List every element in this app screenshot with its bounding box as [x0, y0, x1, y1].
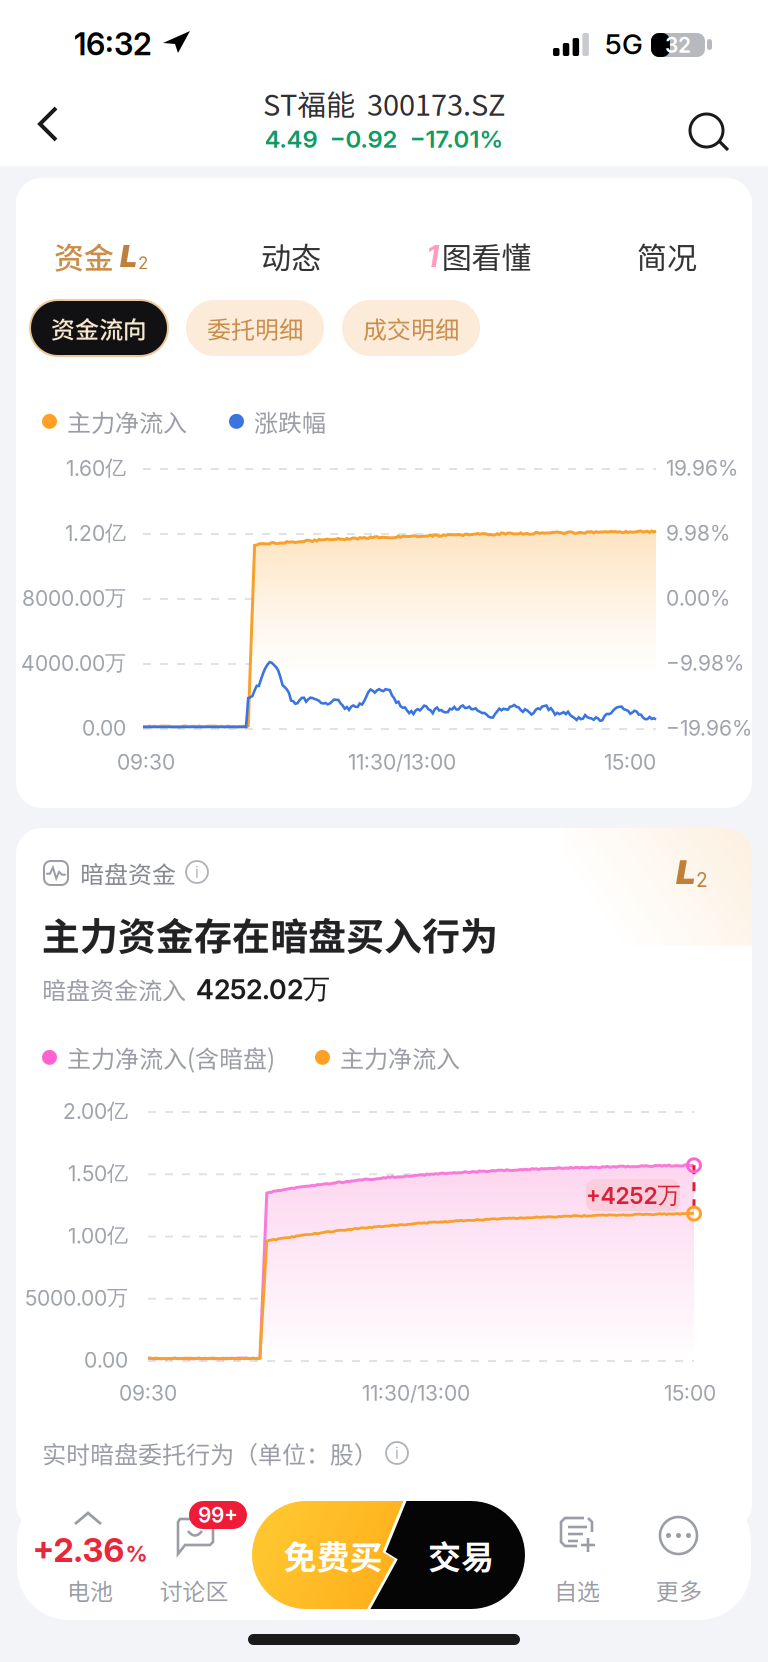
button[interactable]: +2.36 — [20, 1489, 160, 1620]
button[interactable]: 自选 — [521, 1489, 633, 1620]
staticText: 2.00亿 — [63, 1098, 128, 1124]
staticText: +4252万 — [585, 1181, 680, 1210]
staticText: 主力净流入 — [67, 404, 187, 439]
staticText: 交易 — [428, 1531, 494, 1579]
staticText: 1.20亿 — [65, 520, 126, 546]
staticText: 图看懂 — [441, 234, 531, 278]
staticText: i — [195, 862, 199, 882]
staticText: 资金流向 — [51, 311, 147, 345]
staticText: 5G — [605, 27, 643, 61]
button[interactable]: 动态 — [206, 178, 376, 278]
staticText: 更多 — [656, 1573, 702, 1607]
staticText: 99+ — [198, 1502, 238, 1528]
staticText: 15:00 — [664, 1380, 716, 1406]
staticText: 16:32 — [74, 25, 152, 63]
button[interactable]: 1 — [394, 178, 564, 278]
button[interactable]: 免费买 — [252, 1501, 525, 1609]
staticText: 1.60亿 — [66, 455, 126, 481]
staticText: 0.00 — [84, 1347, 128, 1373]
staticText: 动态 — [261, 234, 321, 278]
staticText: 2 — [696, 868, 708, 891]
staticText: % — [125, 1540, 147, 1567]
button[interactable]: 99+ — [129, 1489, 259, 1620]
staticText: 32 — [665, 32, 691, 58]
staticText: 暗盘资金 — [80, 856, 176, 890]
staticText: 实时暗盘委托行为（单位：股） — [42, 1436, 378, 1470]
staticText: 9.98% — [666, 520, 730, 546]
staticText: −19.96% — [666, 715, 752, 741]
staticText: 讨论区 — [159, 1573, 228, 1607]
button[interactable]: 更多 — [623, 1489, 735, 1620]
staticText: 简况 — [637, 234, 697, 278]
staticText: 8000.00万 — [22, 585, 126, 611]
staticText: 09:30 — [119, 1380, 177, 1406]
staticText: 4000.00万 — [21, 650, 126, 676]
button[interactable]: 成交明细 — [342, 300, 480, 356]
staticText: 暗盘资金流入 — [42, 972, 186, 1006]
staticText: 资金 — [54, 234, 114, 278]
staticText: 1.50亿 — [68, 1160, 128, 1186]
staticText: 2 — [138, 253, 148, 273]
staticText: 自选 — [554, 1573, 600, 1607]
staticText: 0.00 — [82, 715, 126, 741]
button[interactable]: 简况 — [582, 178, 752, 278]
staticText: 主力净流入(含暗盘) — [67, 1040, 275, 1075]
staticText: +2.36 — [32, 1530, 124, 1570]
button[interactable]: 委托明细 — [186, 300, 324, 356]
staticText: 委托明细 — [207, 311, 303, 345]
staticText: 成交明细 — [363, 311, 459, 345]
staticText: −9.98% — [666, 650, 744, 676]
staticText: 电池 — [67, 1573, 113, 1607]
staticText: 涨跌幅 — [254, 404, 326, 439]
button[interactable]: Search — [663, 70, 751, 158]
staticText: 1.00亿 — [68, 1222, 128, 1249]
staticText: ST福能 300173.SZ — [263, 82, 505, 124]
staticText: 1 — [426, 238, 438, 274]
staticText: 0.00% — [666, 585, 730, 611]
staticText: 4.49 −0.92 −17.01% — [264, 124, 503, 153]
staticText: 15:00 — [604, 749, 656, 775]
staticText: 09:30 — [117, 749, 175, 775]
staticText: 11:30/13:00 — [362, 1380, 470, 1406]
staticText: L — [120, 238, 137, 274]
staticText: 19.96% — [666, 455, 738, 481]
staticText: i — [395, 1443, 399, 1463]
button[interactable]: 资金 — [16, 178, 186, 278]
staticText: 4252.02万 — [196, 972, 330, 1006]
staticText: 主力净流入 — [340, 1040, 460, 1075]
staticText: 5000.00万 — [25, 1284, 128, 1311]
staticText: 免费买 — [283, 1531, 382, 1579]
staticText: 主力资金存在暗盘买入行为 — [42, 906, 498, 961]
staticText: 11:30/13:00 — [348, 749, 456, 775]
button[interactable]: 资金流向 — [30, 300, 168, 356]
button[interactable]: Back — [4, 70, 92, 158]
staticText: L — [676, 851, 695, 892]
